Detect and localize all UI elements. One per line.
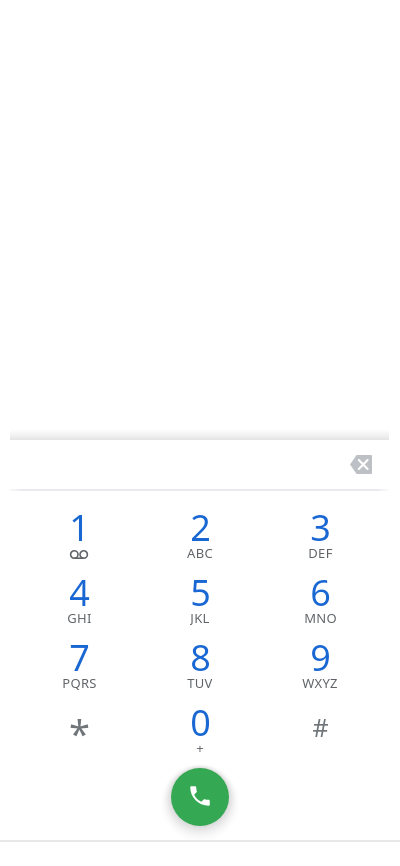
staticText: TUV (187, 674, 213, 690)
button[interactable]: Call (171, 768, 229, 826)
staticText: 8 (190, 633, 211, 677)
button[interactable]: 0 (140, 698, 260, 763)
button[interactable]: 2 (140, 503, 260, 568)
staticText: 0 (190, 698, 211, 742)
staticText: 7 (69, 633, 90, 677)
staticText: + (196, 739, 204, 755)
button[interactable]: Backspace (340, 444, 381, 485)
staticText: 2 (190, 503, 211, 547)
staticText: ABC (187, 544, 213, 560)
staticText: 4 (69, 568, 90, 612)
button[interactable]: 3 (260, 503, 380, 568)
button[interactable]: 9 (260, 633, 380, 698)
staticText: 9 (310, 633, 331, 677)
staticText: 5 (190, 568, 211, 612)
button[interactable]: 4 (19, 568, 139, 633)
staticText: MNO (304, 609, 337, 625)
button[interactable]: 6 (260, 568, 380, 633)
staticText: 6 (310, 568, 331, 612)
staticText: WXYZ (302, 674, 338, 690)
staticText: # (312, 710, 329, 744)
staticText: 1 (69, 503, 90, 547)
staticText: JKL (190, 609, 210, 625)
staticText: PQRS (62, 674, 97, 690)
button[interactable]: 1 (19, 503, 139, 568)
staticText: 3 (310, 503, 331, 547)
button[interactable]: * (19, 698, 139, 763)
staticText: DEF (308, 544, 333, 560)
staticText: GHI (67, 609, 92, 625)
button[interactable]: 8 (140, 633, 260, 698)
button[interactable]: 5 (140, 568, 260, 633)
staticText: * (69, 707, 90, 751)
button[interactable]: # (260, 698, 380, 763)
button[interactable]: 7 (19, 633, 139, 698)
